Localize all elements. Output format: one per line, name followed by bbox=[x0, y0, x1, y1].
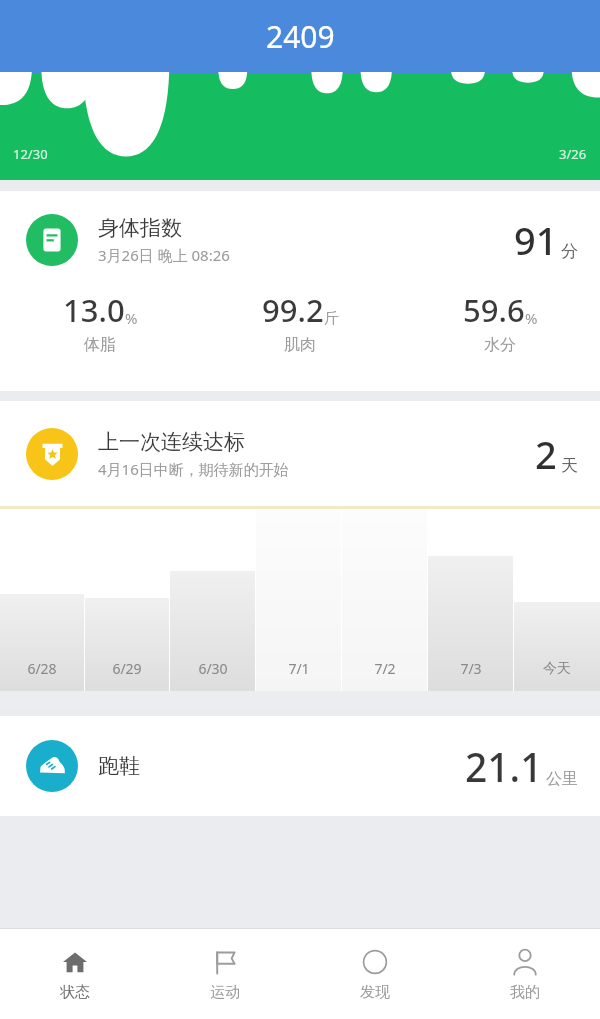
staticText: 今天 bbox=[543, 660, 571, 678]
staticText: 2409 bbox=[266, 16, 335, 57]
button[interactable]: 跑鞋 bbox=[0, 716, 600, 816]
staticText: 7/3 bbox=[460, 659, 482, 678]
staticText: 12/30 bbox=[13, 145, 48, 163]
button[interactable]: 发现 bbox=[300, 929, 450, 1019]
staticText: 运动 bbox=[210, 983, 240, 1002]
staticText: 公里 bbox=[546, 769, 578, 789]
button[interactable]: 运动 bbox=[150, 929, 300, 1019]
staticText: 6/29 bbox=[112, 659, 142, 678]
staticText: 斤 bbox=[324, 309, 339, 328]
staticText: 我的 bbox=[510, 983, 540, 1002]
staticText: 天 bbox=[561, 455, 578, 476]
staticText: 身体指数 bbox=[98, 215, 182, 241]
staticText: % bbox=[525, 308, 538, 328]
staticText: % bbox=[125, 308, 138, 328]
staticText: 99.2 bbox=[262, 289, 324, 331]
staticText: 4月16日中断，期待新的开始 bbox=[98, 459, 289, 479]
staticText: 7/1 bbox=[288, 659, 310, 678]
staticText: 跑鞋 bbox=[98, 753, 465, 779]
button[interactable]: 身体指数 bbox=[0, 191, 600, 391]
staticText: 21.1 bbox=[465, 740, 543, 793]
button[interactable]: 我的 bbox=[450, 929, 600, 1019]
staticText: 7/2 bbox=[374, 659, 396, 678]
staticText: 3月26日 晚上 08:26 bbox=[98, 245, 230, 265]
staticText: 肌肉 bbox=[284, 335, 316, 355]
button[interactable]: 上一次连续达标 bbox=[0, 401, 600, 506]
staticText: 发现 bbox=[360, 983, 390, 1002]
staticText: 6/30 bbox=[198, 659, 228, 678]
staticText: 59.6 bbox=[463, 289, 525, 331]
staticText: 分 bbox=[561, 241, 578, 262]
staticText: 体脂 bbox=[84, 335, 116, 355]
staticText: 状态 bbox=[60, 983, 90, 1002]
button[interactable]: 状态 bbox=[0, 929, 150, 1019]
staticText: 13.0 bbox=[63, 289, 125, 331]
staticText: 2 bbox=[535, 428, 557, 480]
staticText: 上一次连续达标 bbox=[98, 429, 245, 455]
staticText: 91 bbox=[514, 214, 558, 266]
staticText: 水分 bbox=[484, 335, 516, 355]
button[interactable]: 6/28 bbox=[0, 509, 600, 691]
staticText: 6/28 bbox=[27, 659, 57, 678]
staticText: 3/26 bbox=[559, 145, 587, 163]
